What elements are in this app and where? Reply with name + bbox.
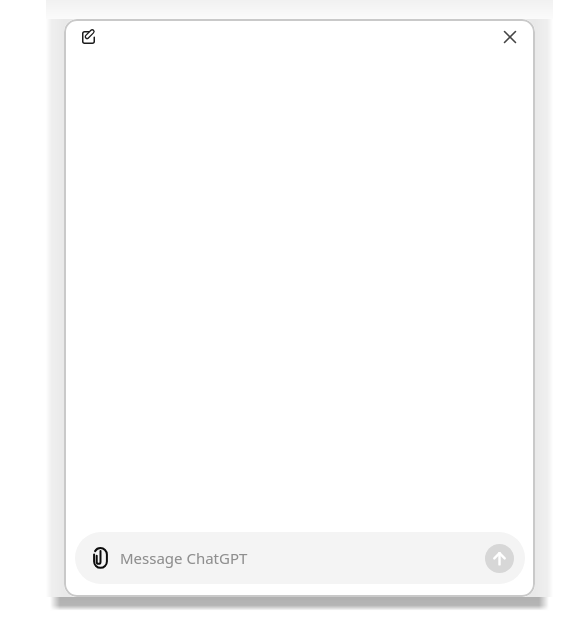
button[interactable] bbox=[74, 23, 102, 51]
button[interactable] bbox=[93, 547, 108, 569]
button[interactable]: Message ChatGPT bbox=[75, 532, 525, 584]
button[interactable] bbox=[485, 544, 514, 573]
staticText: Message ChatGPT bbox=[120, 548, 248, 568]
button[interactable] bbox=[496, 23, 524, 51]
